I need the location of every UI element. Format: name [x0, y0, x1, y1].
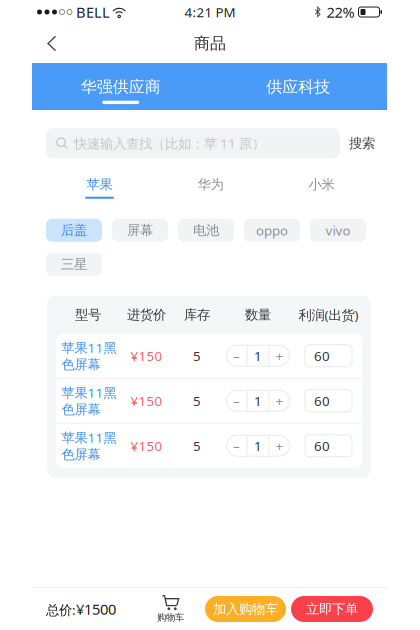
button[interactable]: 60 — [305, 345, 352, 367]
staticText: 苹果11黑色屏幕 — [61, 384, 116, 418]
staticText: 总价:¥1500 — [46, 599, 116, 619]
staticText: ¥150 — [130, 392, 162, 410]
staticText: 1 — [254, 437, 262, 455]
staticText: 进货价 — [127, 307, 166, 323]
staticText: – — [233, 437, 240, 455]
button[interactable]: 搜索 — [340, 127, 384, 159]
button[interactable]: 供应科技 — [209, 63, 387, 110]
staticText: – — [233, 392, 240, 410]
staticText: 苹果 — [86, 176, 112, 193]
button[interactable]: 购物车 — [149, 595, 205, 623]
staticText: ¥150 — [130, 437, 162, 455]
button[interactable]: Back — [0, 26, 73, 60]
button[interactable]: 60 — [305, 435, 352, 457]
staticText: 屏幕 — [127, 222, 153, 238]
staticText: 华强供应商 — [81, 77, 161, 97]
button[interactable]: Increase quantity — [269, 345, 289, 366]
button[interactable]: vivo — [310, 219, 366, 242]
staticText: 加入购物车 — [213, 601, 278, 617]
staticText: 60 — [314, 347, 330, 365]
button[interactable]: 屏幕 — [112, 219, 168, 242]
staticText: 商品 — [194, 34, 226, 53]
staticText: 苹果11黑色屏幕 — [61, 429, 116, 463]
staticText: 三星 — [61, 256, 87, 272]
staticText: oppo — [256, 221, 288, 239]
staticText: 快速输入查找（比如：苹 11 原） — [74, 134, 265, 152]
staticText: + — [275, 392, 283, 410]
button[interactable]: 后盖 — [46, 219, 102, 242]
staticText: 苹果11黑色屏幕 — [61, 339, 116, 373]
staticText: 库存 — [184, 307, 210, 323]
staticText: + — [275, 347, 283, 365]
staticText: 型号 — [75, 307, 101, 323]
staticText: 后盖 — [61, 222, 87, 238]
button[interactable]: Decrease quantity — [226, 390, 246, 411]
button[interactable]: 小米 — [266, 176, 377, 199]
staticText: 购物车 — [157, 612, 184, 623]
staticText: 搜索 — [349, 135, 375, 151]
button[interactable]: Increase quantity — [269, 435, 289, 456]
staticText: 立即下单 — [306, 601, 358, 617]
button[interactable]: 立即下单 — [286, 596, 373, 622]
button[interactable]: Increase quantity — [269, 390, 289, 411]
staticText: BELL — [72, 2, 110, 22]
staticText: 4:21 PM — [184, 3, 235, 21]
staticText: – — [233, 347, 240, 365]
staticText: 1 — [254, 347, 262, 365]
button[interactable]: 60 — [305, 390, 352, 412]
staticText: + — [275, 437, 283, 455]
staticText: 小米 — [308, 176, 334, 193]
staticText: 利润(出货) — [298, 306, 358, 324]
staticText: 60 — [314, 437, 330, 455]
staticText: 1 — [254, 392, 262, 410]
button[interactable]: 电池 — [178, 219, 234, 242]
staticText: 5 — [193, 347, 201, 365]
button[interactable]: 华为 — [155, 176, 266, 199]
staticText: 22% — [326, 2, 354, 22]
button[interactable]: Decrease quantity — [226, 345, 246, 366]
staticText: 电池 — [193, 222, 219, 238]
button[interactable]: 华强供应商 — [32, 63, 209, 110]
button[interactable]: 加入购物车 — [205, 596, 286, 622]
button[interactable]: 三星 — [46, 253, 102, 276]
staticText: 5 — [193, 437, 201, 455]
staticText: vivo — [325, 221, 350, 239]
button[interactable]: oppo — [244, 219, 300, 242]
staticText: 供应科技 — [266, 77, 330, 97]
staticText: 华为 — [197, 176, 223, 193]
staticText: 60 — [314, 392, 330, 410]
button[interactable]: Decrease quantity — [226, 435, 246, 456]
staticText: 5 — [193, 392, 201, 410]
staticText: 数量 — [245, 307, 271, 323]
button[interactable]: 苹果 — [44, 176, 155, 199]
staticText: ¥150 — [130, 347, 162, 365]
